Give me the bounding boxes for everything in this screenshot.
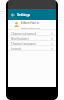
staticText: Notifications <box>11 37 51 41</box>
button[interactable]: Edwin Harris <box>8 20 56 29</box>
staticText: Change language <box>11 42 51 46</box>
staticText: Logout <box>11 47 51 51</box>
button[interactable]: Navigate up <box>9 11 16 18</box>
staticText: Change password <box>11 32 51 36</box>
staticText: Settings <box>17 12 31 17</box>
button[interactable]: Logout <box>8 46 56 51</box>
button[interactable]: Change password <box>8 31 56 36</box>
button[interactable]: Change language <box>8 41 56 46</box>
staticText: edwin@mail.com <box>21 26 41 29</box>
button[interactable]: Notifications <box>8 36 56 41</box>
staticText: Edwin Harris <box>21 21 39 25</box>
